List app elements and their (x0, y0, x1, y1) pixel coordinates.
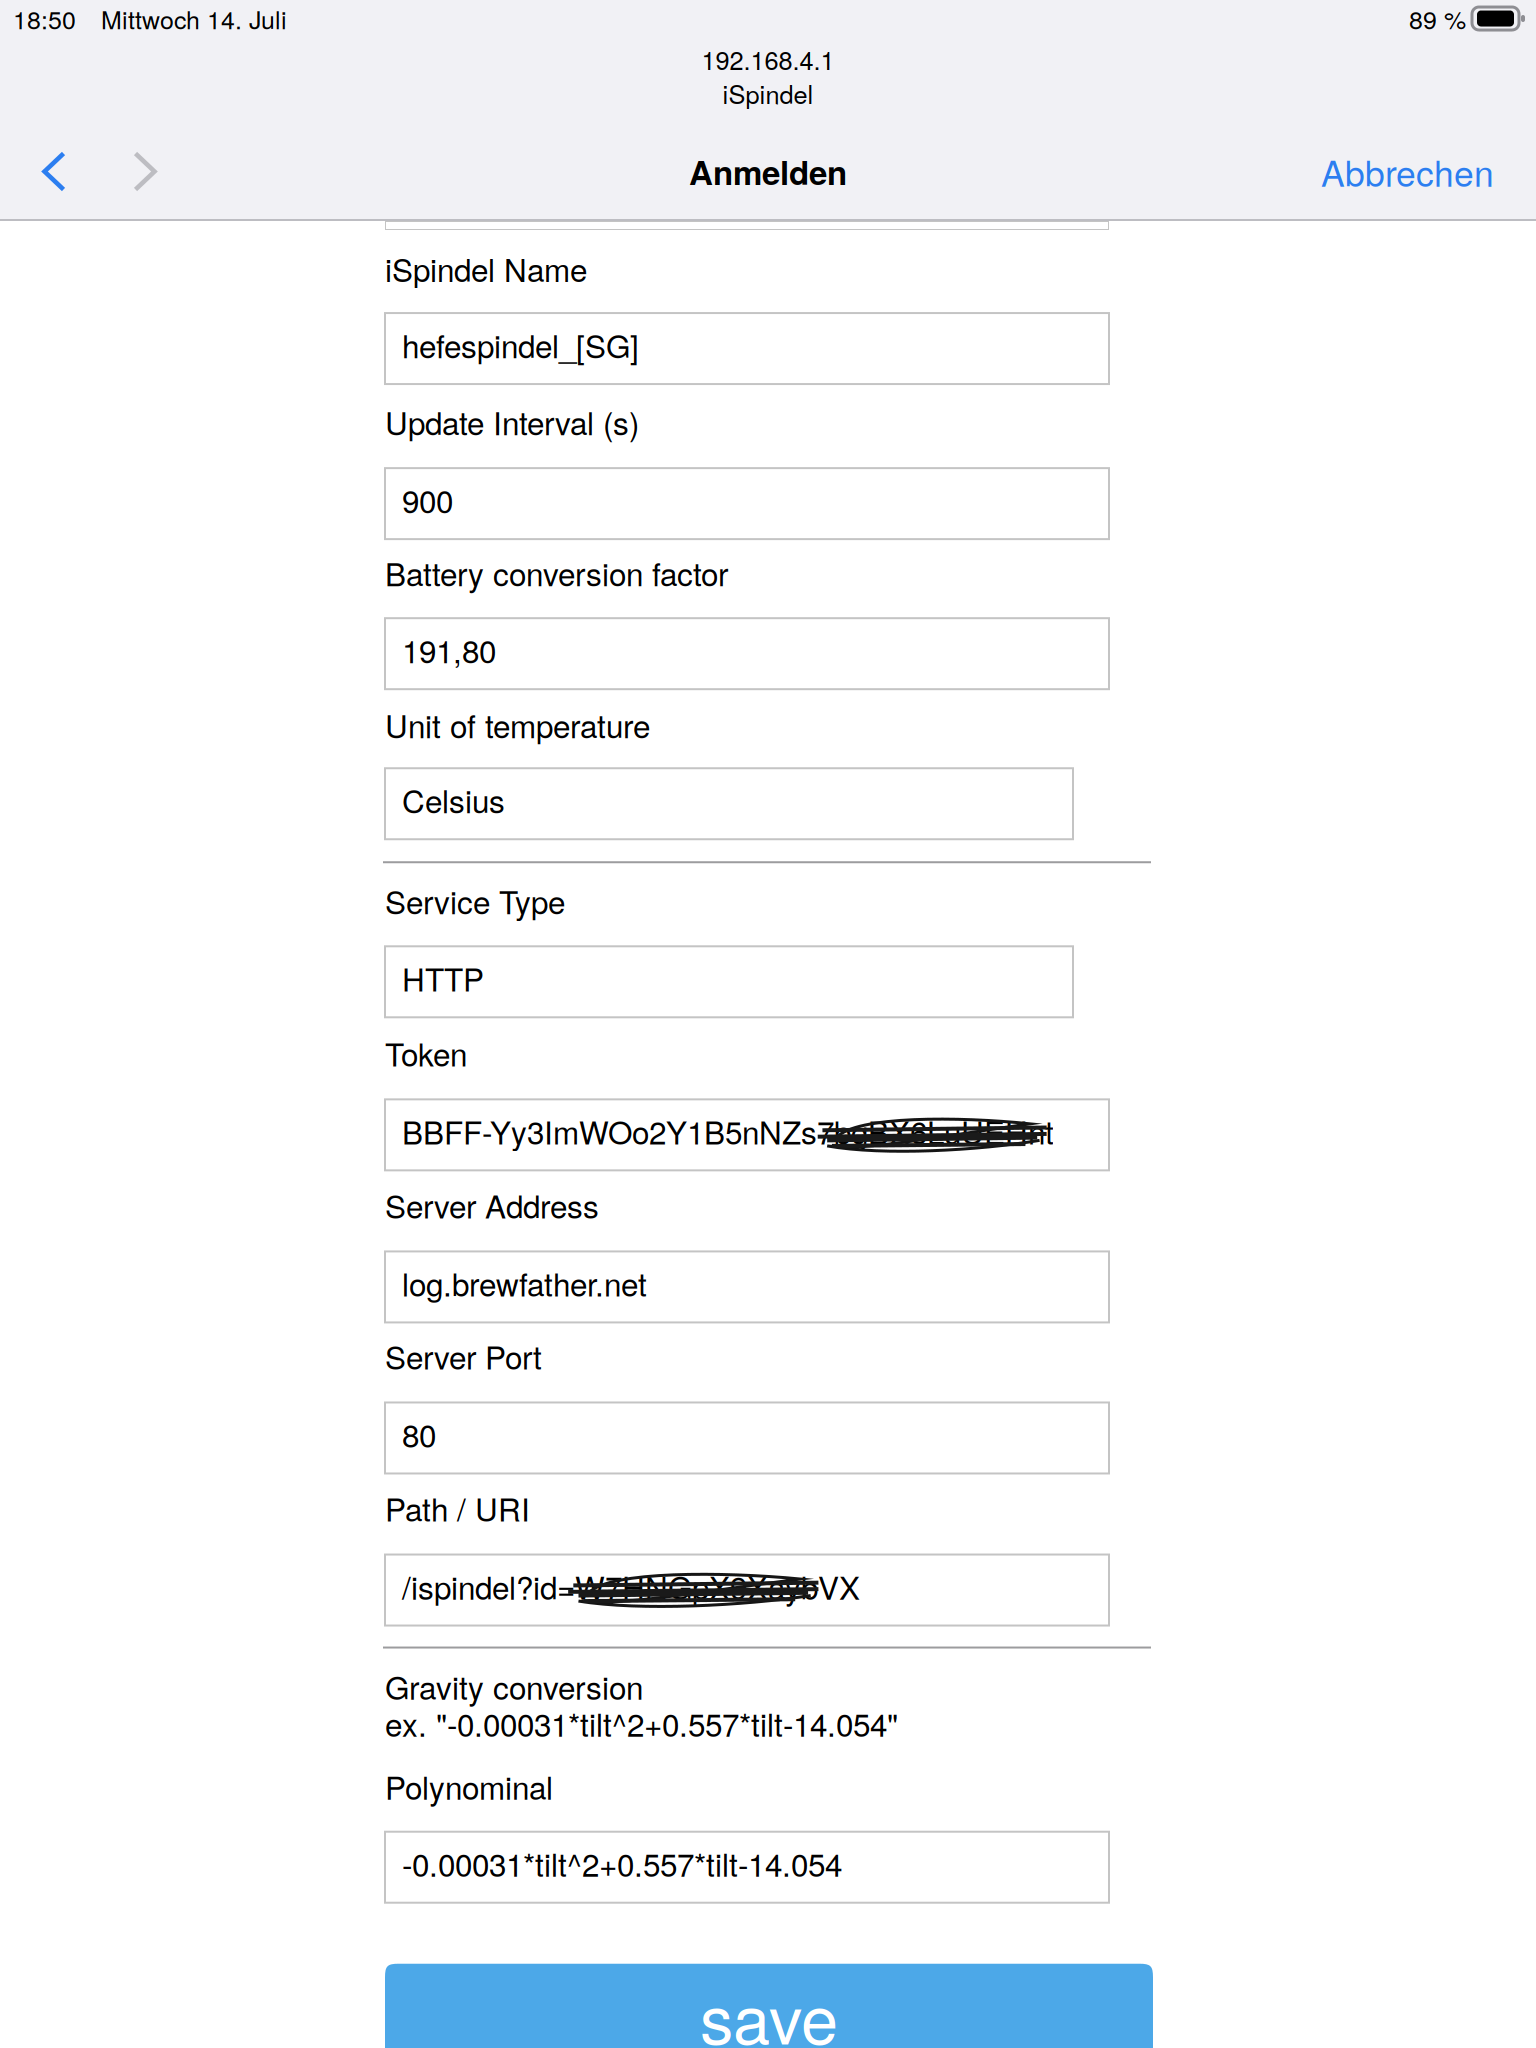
staticText: ex. "-0.00031*tilt^2+0.557*tilt-14.054" (385, 1701, 898, 1746)
staticText: Server Address (385, 1182, 599, 1227)
staticText: hefespindel_[SG] (402, 322, 639, 367)
staticText: save (700, 1968, 838, 2048)
button[interactable]: save (385, 1964, 1153, 2048)
button[interactable]: Forward (105, 131, 185, 211)
staticText: 900 (402, 477, 453, 522)
staticText: Service Type (385, 878, 565, 923)
staticText: 18:50 (13, 1, 76, 36)
staticText: Abbrechen (1321, 146, 1494, 197)
staticText: Gravity conversion (385, 1663, 643, 1709)
staticText: Path / URI (385, 1485, 530, 1531)
staticText: /ispindel?id=W7HNGpX9XaybVX (402, 1563, 860, 1609)
staticText: HTTP (402, 955, 484, 1000)
staticText: Update Interval (s) (385, 399, 639, 444)
staticText: Anmelden (689, 148, 847, 195)
staticText: Token (385, 1030, 467, 1075)
staticText: Server Port (385, 1333, 542, 1378)
button[interactable]: Abbrechen (1311, 131, 1504, 211)
staticText: 191,80 (402, 627, 496, 672)
staticText: iSpindel Name (385, 246, 587, 291)
staticText: Battery conversion factor (385, 550, 728, 595)
staticText: 192.168.4.1 (701, 41, 834, 77)
staticText: 89 % (1409, 1, 1466, 36)
button[interactable]: Back (14, 131, 94, 211)
staticText: iSpindel (722, 75, 813, 111)
staticText: Celsius (402, 777, 505, 822)
staticText: Unit of temperature (385, 702, 650, 747)
staticText: Polynominal (385, 1764, 553, 1809)
staticText: -0.00031*tilt^2+0.557*tilt-14.054 (402, 1841, 842, 1886)
staticText: 80 (402, 1411, 436, 1456)
staticText: BBFF-Yy3ImWOo2Y1B5nNZs7bgBX6LuUEHnt (402, 1108, 1054, 1153)
staticText: Mittwoch 14. Juli (101, 1, 287, 36)
staticText: log.brewfather.net (402, 1260, 647, 1305)
